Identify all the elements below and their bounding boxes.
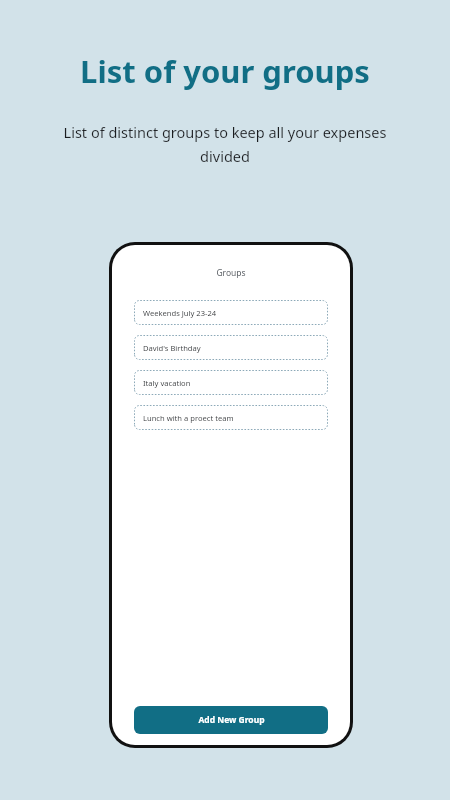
button[interactable]: Lunch with a proect team	[134, 405, 328, 430]
staticText: Italy vacation	[143, 378, 191, 388]
button[interactable]: Add New Group	[134, 706, 328, 734]
staticText: Weekends July 23-24	[143, 308, 217, 318]
button[interactable]: Weekends July 23-24	[134, 300, 328, 325]
button[interactable]: Italy vacation	[134, 370, 328, 395]
staticText: Add New Group	[198, 714, 265, 726]
staticText: List of your groups	[0, 50, 450, 92]
staticText: David's Birthday	[143, 343, 201, 353]
staticText: Lunch with a proect team	[143, 413, 234, 423]
staticText: Groups	[112, 267, 350, 279]
button[interactable]: David's Birthday	[134, 335, 328, 360]
staticText: List of distinct groups to keep all your…	[56, 122, 394, 166]
